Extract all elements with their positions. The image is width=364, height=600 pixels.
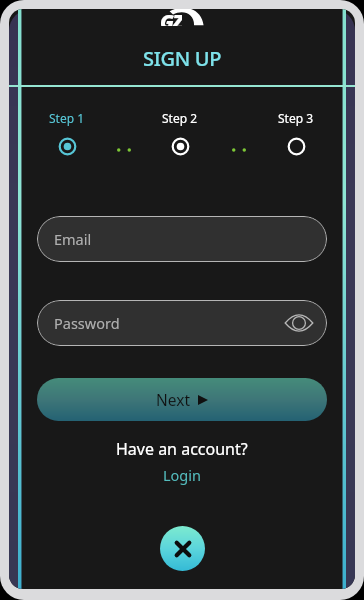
button[interactable]: Login (153, 461, 211, 489)
staticText: Step 3 (278, 110, 314, 126)
button[interactable]: Close (160, 526, 205, 571)
button[interactable]: Email (37, 216, 327, 262)
staticText: Step 2 (162, 110, 198, 126)
staticText: Next (156, 389, 191, 410)
staticText: SIGN UP (143, 45, 222, 72)
button[interactable]: Step 1 (42, 110, 92, 156)
staticText: GZ (160, 9, 182, 26)
staticText: Password (54, 313, 283, 333)
button[interactable]: Password (37, 300, 327, 346)
staticText: Have an account? (116, 438, 248, 460)
staticText: Step 1 (49, 110, 85, 126)
button[interactable]: Show password (283, 311, 315, 335)
button[interactable]: Step 2 (155, 110, 205, 156)
staticText: Email (54, 229, 315, 249)
button[interactable]: Next (37, 378, 327, 421)
button[interactable]: Step 3 (271, 110, 321, 156)
staticText: Login (163, 465, 201, 485)
